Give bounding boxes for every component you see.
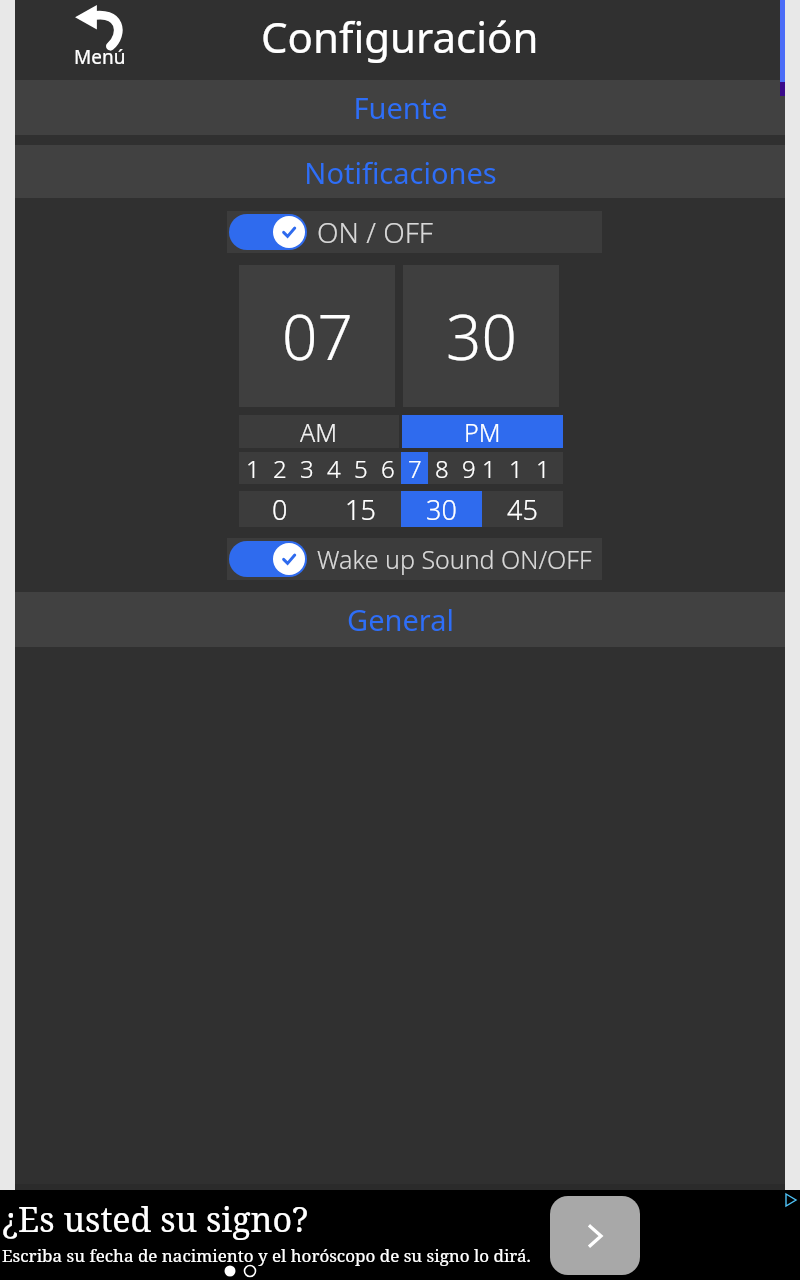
staticText: AM [300,415,338,448]
staticText: 10 [482,452,509,484]
button[interactable]: 8 [428,452,455,484]
staticText: 5 [354,452,368,484]
button[interactable]: AM [239,415,399,448]
button[interactable]: 1 [239,452,266,484]
staticText: ON / OFF [317,213,433,251]
button[interactable]: 15 [320,491,401,527]
staticText: Fuente [353,88,448,127]
button[interactable]: 11 [509,452,536,484]
staticText: Configuración [261,8,539,65]
button[interactable]: 6 [374,452,401,484]
staticText: 6 [381,452,395,484]
staticText: 30 [446,294,517,378]
staticText: 30 [426,491,457,527]
staticText: 12 [536,452,563,484]
staticText: 0 [272,491,288,527]
button[interactable]: General [15,592,785,647]
staticText: 9 [462,452,476,484]
button[interactable]: Abrir anuncio [550,1196,640,1275]
staticText: 45 [507,491,538,527]
button[interactable]: 0 [239,491,320,527]
button[interactable]: 2 [266,452,293,484]
button[interactable]: 10 [482,452,509,484]
button[interactable]: 5 [347,452,374,484]
button[interactable]: 07 [239,265,395,407]
button[interactable]: 12 [536,452,563,484]
staticText: 4 [327,452,341,484]
staticText: 3 [300,452,314,484]
button[interactable]: Menú [65,0,135,78]
staticText: 07 [282,294,353,378]
staticText: 11 [509,452,536,484]
button[interactable]: 9 [455,452,482,484]
button[interactable]: 7 [401,452,428,484]
button[interactable]: 30 [403,265,559,407]
button[interactable]: Fuente [15,80,785,135]
staticText: 8 [435,452,449,484]
staticText: 15 [345,491,376,527]
staticText: 7 [408,452,422,484]
button[interactable]: 3 [293,452,320,484]
staticText: ¿Es usted su signo? [2,1196,309,1242]
staticText: General [347,600,454,639]
button[interactable]: Notificaciones [15,145,785,200]
other: Toggle Wake up Sound ON/OFF [229,541,307,577]
staticText: Wake up Sound ON/OFF [317,542,592,576]
staticText: Menú [74,44,126,70]
other: Toggle ON / OFF [229,214,307,250]
staticText: PM [464,415,501,448]
staticText: Escriba su fecha de nacimiento y el horó… [2,1244,531,1267]
button[interactable]: Toggle ON / OFF [227,211,602,253]
staticText: Notificaciones [304,153,497,192]
button[interactable]: ¿Es usted su signo? [0,1190,800,1280]
button[interactable]: PM [402,415,563,448]
button[interactable]: 4 [320,452,347,484]
button[interactable]: 30 [401,491,482,527]
staticText: 1 [246,452,260,484]
button[interactable]: Toggle Wake up Sound ON/OFF [227,538,602,580]
staticText: 2 [273,452,287,484]
button[interactable]: 45 [482,491,563,527]
